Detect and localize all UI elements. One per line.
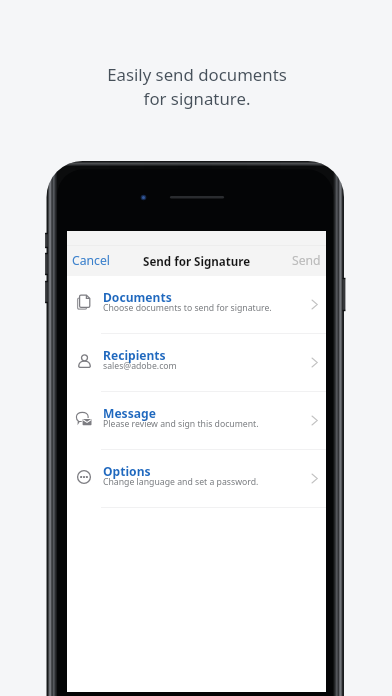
staticText: Easily send documents for signature. xyxy=(1,63,392,110)
staticText: Documents xyxy=(103,289,172,305)
staticText: sales@adobe.com xyxy=(103,360,177,372)
button[interactable]: Options xyxy=(67,450,326,508)
staticText: Please review and sign this document. xyxy=(103,418,259,430)
staticText: Choose documents to send for signature. xyxy=(103,302,272,314)
staticText: Options xyxy=(103,463,151,479)
button[interactable]: Documents xyxy=(67,276,326,334)
button[interactable]: Cancel xyxy=(67,245,120,276)
staticText: Cancel xyxy=(72,252,110,269)
button[interactable]: Message xyxy=(67,392,326,450)
staticText: Send xyxy=(292,252,321,269)
button[interactable]: Recipients xyxy=(67,334,326,392)
staticText: Change language and set a password. xyxy=(103,476,259,488)
staticText: Recipients xyxy=(103,347,166,363)
staticText: Send for Signature xyxy=(143,254,251,270)
button[interactable]: Send xyxy=(282,245,326,276)
staticText: Message xyxy=(103,405,156,421)
